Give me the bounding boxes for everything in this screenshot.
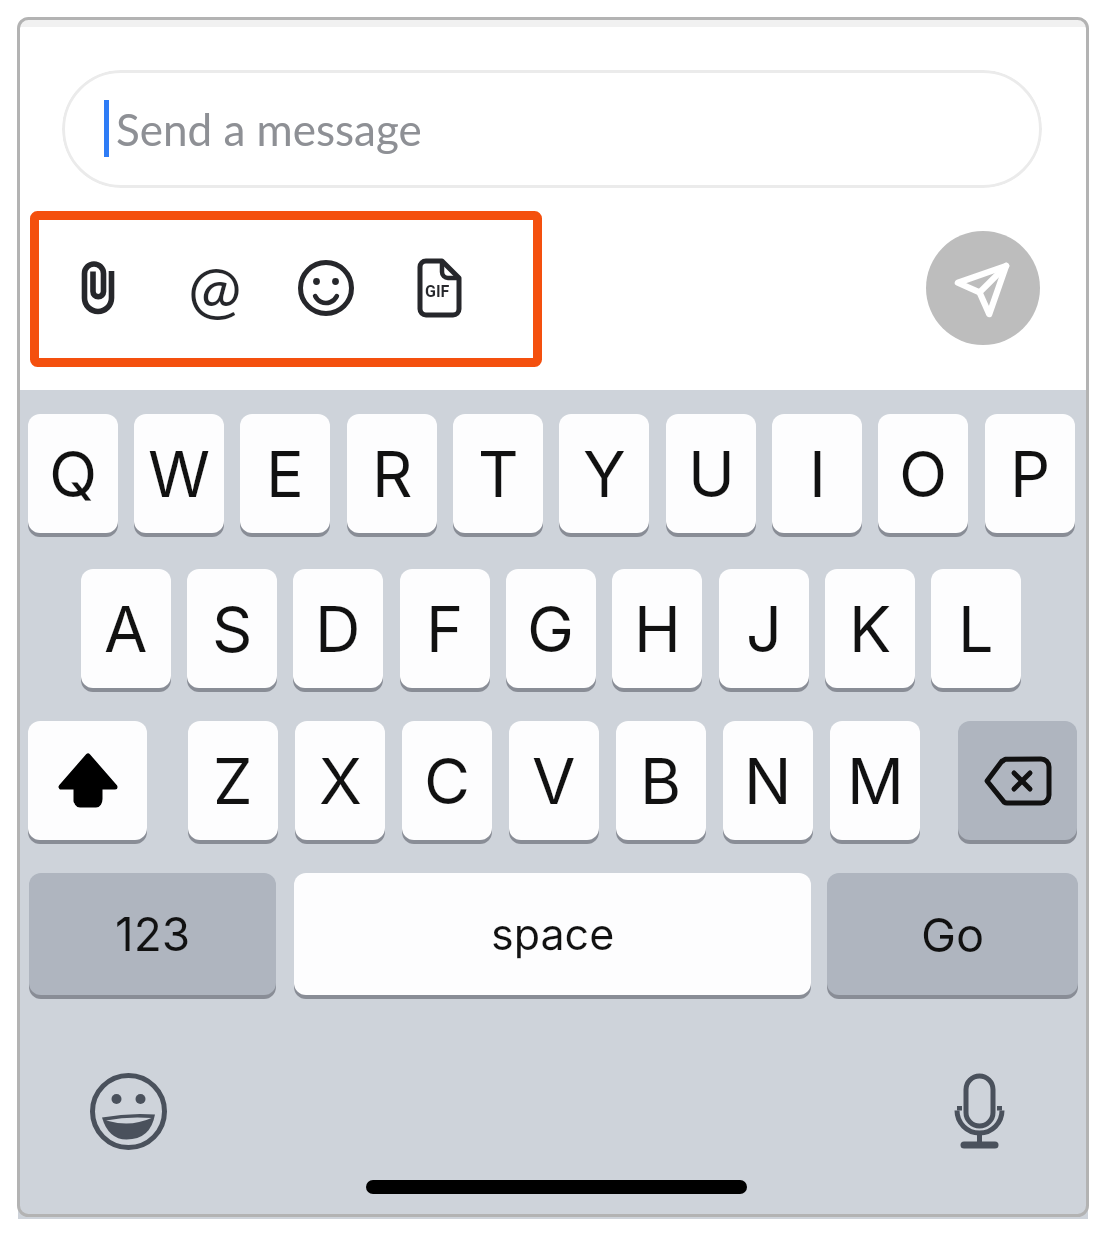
staticText: @ [188,249,242,326]
staticText: I [809,436,826,512]
button[interactable]: J [719,569,809,688]
staticText: O [899,436,948,512]
staticText: D [315,591,361,667]
button[interactable]: Go [827,873,1078,995]
button[interactable]: D [293,569,383,688]
staticText: Send a message [116,103,422,156]
button[interactable] [63,253,133,323]
staticText: C [424,743,471,819]
staticText: T [478,436,519,512]
button[interactable]: @ [175,247,255,327]
staticText: K [849,591,892,667]
staticText: P [1010,436,1051,512]
button[interactable]: N [723,721,813,840]
staticText: Y [583,436,626,512]
button[interactable]: P [985,414,1075,533]
button[interactable] [28,721,147,840]
button[interactable]: C [402,721,492,840]
staticText: B [640,743,682,819]
button[interactable]: F [400,569,490,688]
staticText: V [532,743,576,819]
button[interactable]: X [295,721,385,840]
staticText: GIF [425,282,450,301]
staticText: Z [213,743,253,819]
staticText: L [958,591,994,667]
button[interactable] [926,231,1040,345]
staticText: W [148,436,211,512]
button[interactable]: GIF [404,253,474,323]
button[interactable] [958,721,1077,840]
staticText: N [744,743,792,819]
button[interactable]: space [294,873,811,995]
button[interactable]: L [931,569,1021,688]
staticText: X [319,743,362,819]
staticText: G [527,591,575,667]
button[interactable]: M [830,721,920,840]
button[interactable]: K [825,569,915,688]
button[interactable]: O [878,414,968,533]
button[interactable]: Send a message [62,70,1042,188]
button[interactable]: Y [559,414,649,533]
staticText: F [426,591,464,667]
button[interactable]: S [187,569,277,688]
button[interactable]: Z [188,721,278,840]
button[interactable]: E [240,414,330,533]
staticText: U [688,436,735,512]
button[interactable]: W [134,414,224,533]
button[interactable]: Q [28,414,118,533]
button[interactable]: A [81,569,171,688]
staticText: E [266,436,304,512]
button[interactable]: 123 [29,873,276,995]
button[interactable] [948,1066,1012,1154]
button[interactable]: R [347,414,437,533]
staticText: S [212,591,253,667]
button[interactable]: I [772,414,862,533]
button[interactable]: H [612,569,702,688]
staticText: 123 [115,906,191,962]
button[interactable]: B [616,721,706,840]
staticText: space [491,908,615,960]
staticText: R [372,436,413,512]
staticText: A [104,591,148,667]
button[interactable] [291,253,361,323]
staticText: M [847,743,904,819]
button[interactable]: U [666,414,756,533]
button[interactable]: T [453,414,543,533]
button[interactable]: V [509,721,599,840]
staticText: H [634,591,681,667]
button[interactable]: G [506,569,596,688]
button[interactable] [88,1071,169,1152]
staticText: J [746,591,782,667]
staticText: Go [921,906,985,963]
staticText: Q [49,436,98,512]
